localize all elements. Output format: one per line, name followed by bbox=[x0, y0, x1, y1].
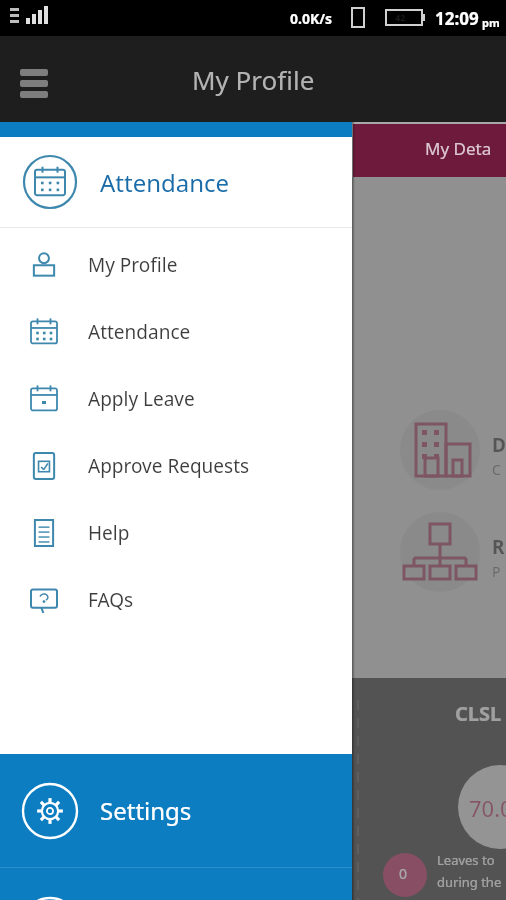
staticText: Attendance bbox=[88, 319, 191, 345]
button[interactable]: Apply Leave bbox=[0, 365, 352, 432]
button[interactable]: My Profile bbox=[0, 231, 352, 298]
button[interactable]: Attendance bbox=[0, 137, 352, 227]
staticText: CLSL bbox=[455, 700, 502, 727]
button[interactable]: Logout bbox=[0, 868, 352, 900]
staticText: FAQs bbox=[88, 587, 134, 613]
staticText: Attendance bbox=[100, 166, 230, 199]
staticText: 42 bbox=[395, 11, 406, 23]
staticText: C bbox=[492, 460, 501, 479]
staticText: Approve Requests bbox=[88, 453, 250, 479]
staticText: Settings bbox=[100, 794, 192, 827]
staticText: during the bbox=[437, 873, 502, 891]
staticText: My Deta bbox=[425, 137, 492, 160]
staticText: 0.0K/s bbox=[290, 9, 333, 28]
button[interactable]: Help bbox=[0, 499, 352, 566]
staticText: Apply Leave bbox=[88, 386, 195, 412]
button[interactable]: Settings bbox=[0, 754, 352, 867]
staticText: My Profile bbox=[88, 252, 178, 278]
staticText: 12:09 bbox=[435, 7, 479, 30]
staticText: Help bbox=[88, 520, 130, 546]
button[interactable]: Approve Requests bbox=[0, 432, 352, 499]
staticText: pm bbox=[482, 15, 500, 30]
staticText: 70.0 bbox=[469, 793, 506, 823]
staticText: 0 bbox=[399, 864, 408, 883]
staticText: D bbox=[492, 432, 506, 458]
staticText: My Profile bbox=[192, 62, 315, 97]
staticText: Leaves to bbox=[437, 851, 495, 869]
button[interactable]: Attendance bbox=[0, 298, 352, 365]
staticText: R bbox=[492, 534, 505, 560]
staticText: P bbox=[492, 562, 501, 581]
button[interactable]: Open navigation menu bbox=[8, 51, 64, 107]
button[interactable]: FAQs bbox=[0, 566, 352, 633]
